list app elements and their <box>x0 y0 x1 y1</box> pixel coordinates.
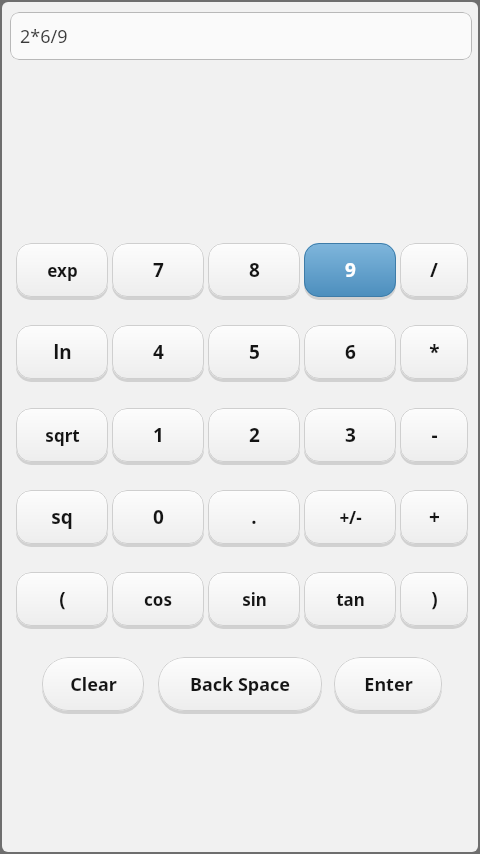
button[interactable]: 8 <box>208 242 300 298</box>
button[interactable]: sqrt <box>16 407 108 463</box>
button[interactable]: ln <box>16 324 108 380</box>
staticText: sin <box>242 588 267 611</box>
staticText: * <box>429 339 440 365</box>
staticText: + <box>429 504 440 530</box>
button[interactable]: - <box>400 407 468 463</box>
button[interactable]: tan <box>304 571 396 627</box>
staticText: 6 <box>345 339 356 365</box>
staticText: 0 <box>153 504 164 530</box>
button[interactable]: . <box>208 489 300 545</box>
staticText: exp <box>47 259 78 282</box>
staticText: sq <box>51 504 73 530</box>
button[interactable]: 0 <box>112 489 204 545</box>
button[interactable]: sin <box>208 571 300 627</box>
button[interactable]: / <box>400 242 468 298</box>
staticText: +/- <box>339 506 362 529</box>
staticText: tan <box>336 588 365 611</box>
button[interactable]: 5 <box>208 324 300 380</box>
button[interactable]: 2*6/9 <box>10 12 472 60</box>
button[interactable]: * <box>400 324 468 380</box>
staticText: 4 <box>153 339 164 365</box>
button[interactable]: + <box>400 489 468 545</box>
staticText: / <box>430 257 438 283</box>
button[interactable]: Clear <box>42 656 144 712</box>
staticText: Enter <box>364 672 413 697</box>
staticText: . <box>251 504 257 530</box>
button[interactable]: sq <box>16 489 108 545</box>
staticText: 1 <box>153 422 164 448</box>
button[interactable]: 6 <box>304 324 396 380</box>
staticText: - <box>431 422 438 448</box>
staticText: 2 <box>249 422 260 448</box>
button[interactable]: +/- <box>304 489 396 545</box>
button[interactable]: Back Space <box>158 656 322 712</box>
button[interactable]: exp <box>16 242 108 298</box>
button[interactable]: 1 <box>112 407 204 463</box>
staticText: Clear <box>70 672 117 697</box>
button[interactable]: 2 <box>208 407 300 463</box>
staticText: 5 <box>249 339 260 365</box>
button[interactable]: 3 <box>304 407 396 463</box>
staticText: Back Space <box>190 672 290 697</box>
button[interactable]: 4 <box>112 324 204 380</box>
staticText: 9 <box>345 257 356 283</box>
button[interactable]: cos <box>112 571 204 627</box>
button[interactable]: Enter <box>334 656 442 712</box>
staticText: sqrt <box>45 424 80 447</box>
button[interactable]: ( <box>16 571 108 627</box>
button[interactable]: 7 <box>112 242 204 298</box>
staticText: 8 <box>249 257 260 283</box>
button[interactable]: ) <box>400 571 468 627</box>
staticText: 2*6/9 <box>20 24 68 49</box>
staticText: cos <box>144 588 172 611</box>
staticText: ln <box>53 339 72 365</box>
staticText: ) <box>431 586 438 612</box>
staticText: 7 <box>153 257 164 283</box>
button[interactable]: 9 <box>304 242 396 298</box>
staticText: ( <box>59 586 66 612</box>
staticText: 3 <box>345 422 356 448</box>
